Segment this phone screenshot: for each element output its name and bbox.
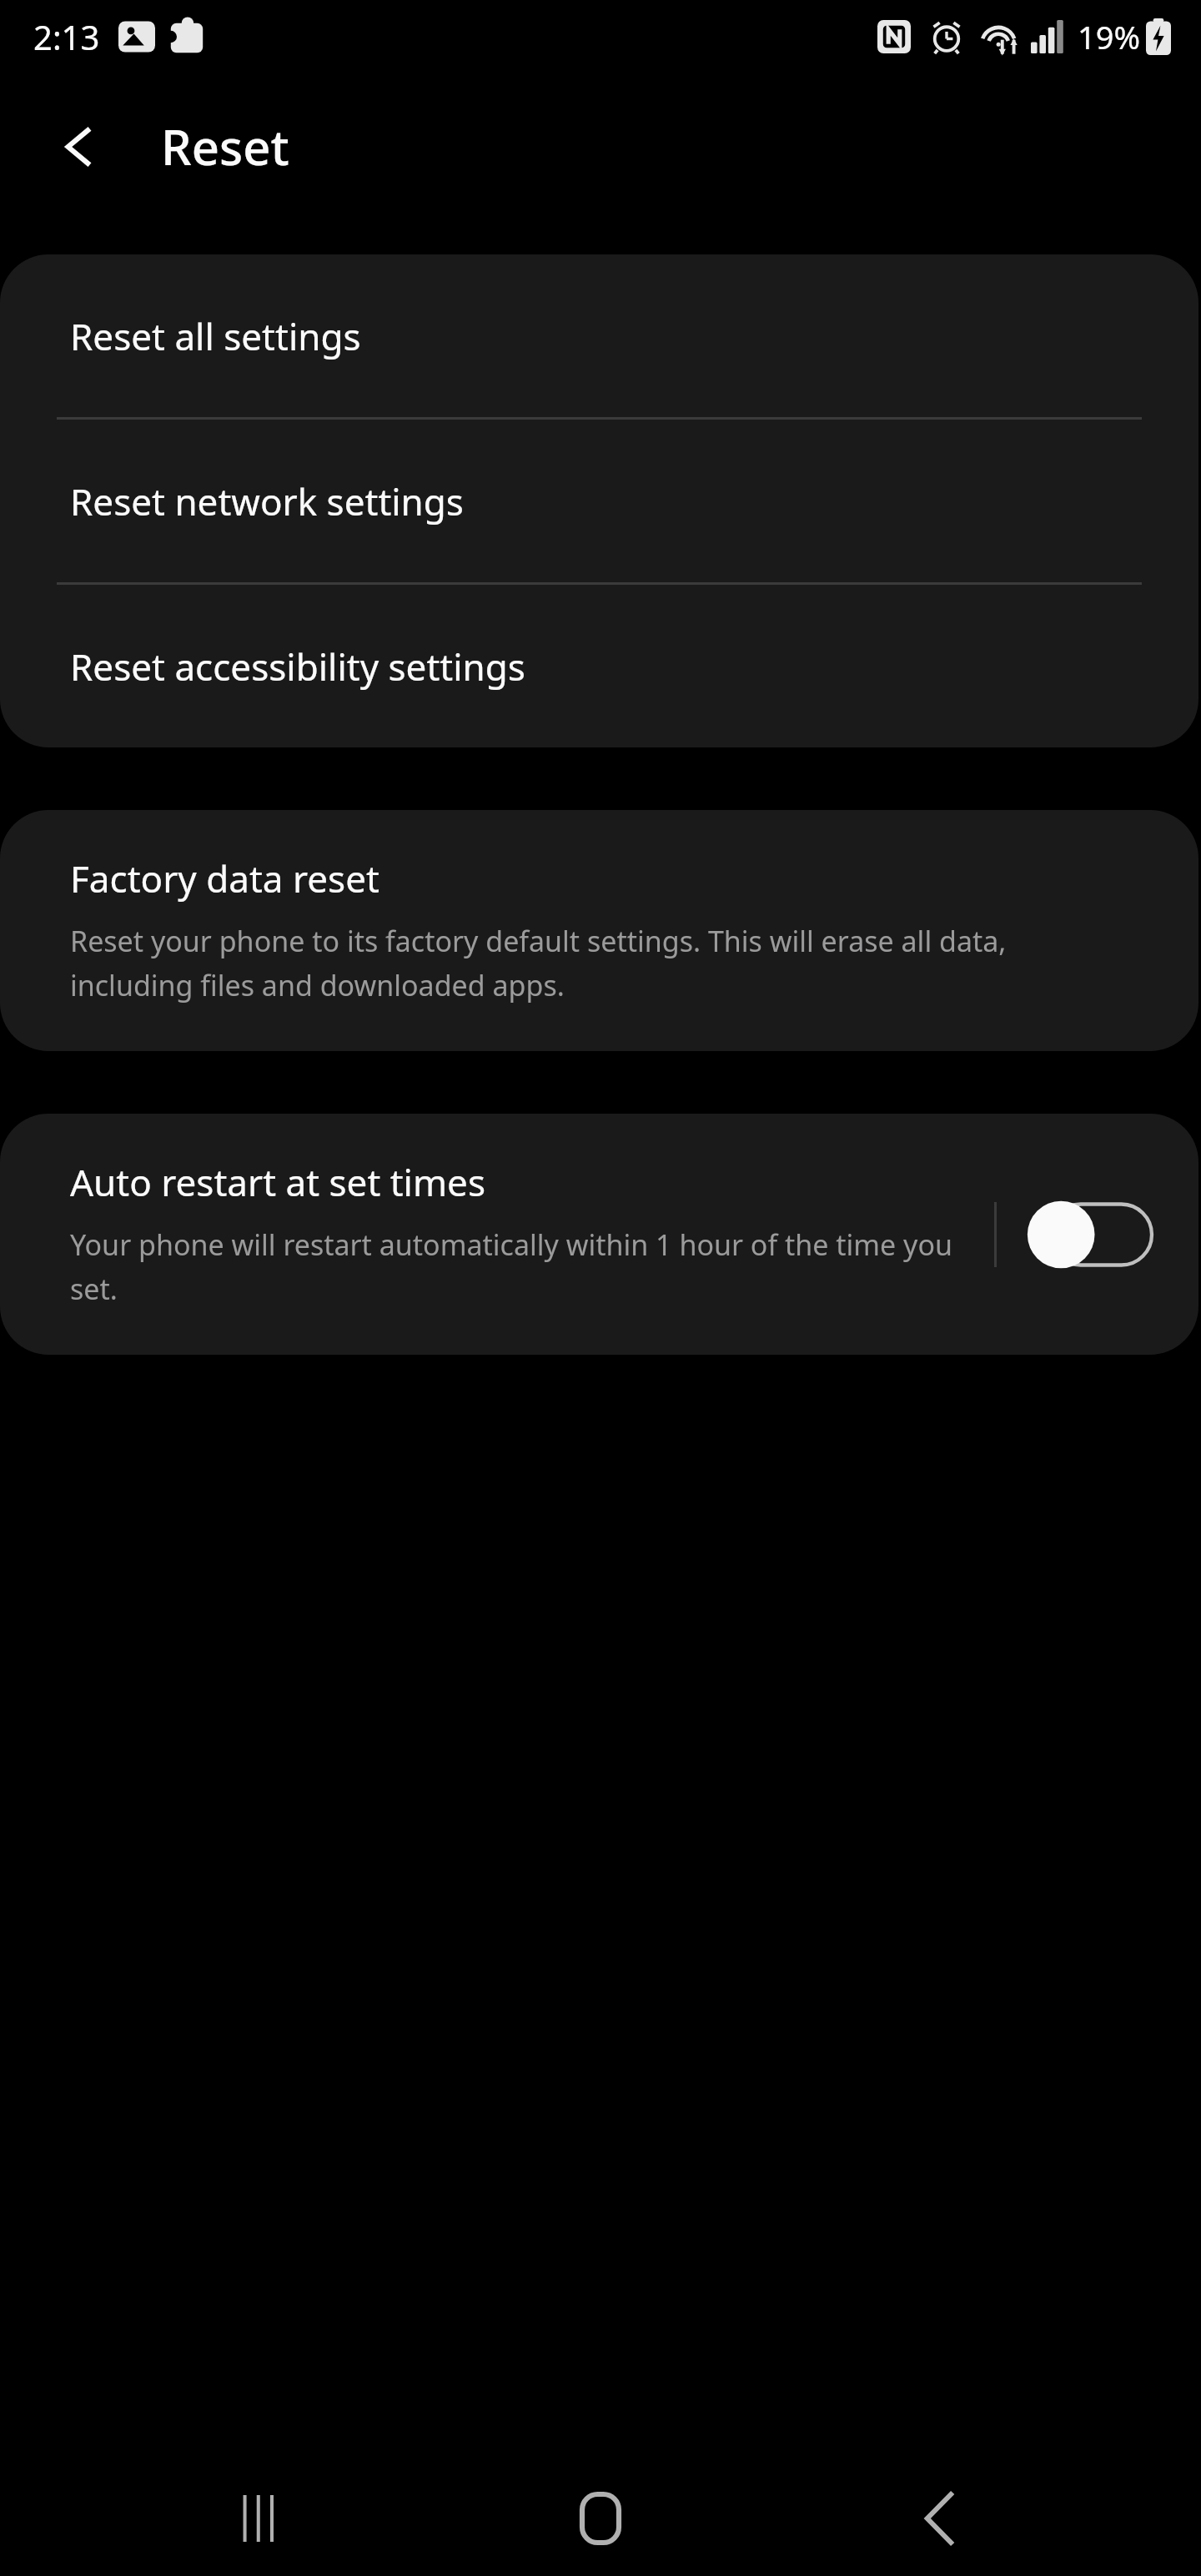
button[interactable]: Reset all settings [0,254,1198,417]
staticText: Reset all settings [70,311,361,361]
button[interactable]: Reset network settings [0,420,1198,582]
staticText: 2:13 [33,14,100,59]
staticText: Auto restart at set times [70,1157,485,1207]
button[interactable]: Auto restart at set times [0,1114,994,1355]
staticText: Reset accessibility settings [70,641,525,692]
staticText: Reset your phone to its factory default … [70,922,1128,1004]
staticText: Reset [161,113,289,179]
staticText: Factory data reset [70,853,379,903]
button[interactable]: Factory data reset [0,810,1198,1051]
button[interactable]: Reset accessibility settings [0,585,1198,747]
button[interactable]: Back [50,117,110,177]
staticText: Reset network settings [70,476,464,526]
staticText: Your phone will restart automatically wi… [70,1225,977,1308]
button[interactable]: Recent apps [215,2473,307,2564]
button[interactable]: Home [555,2473,646,2564]
staticText: 19% [1078,15,1141,58]
button[interactable]: Auto restart at set times toggle, off [1025,1195,1152,1275]
button[interactable]: Back [894,2473,986,2564]
